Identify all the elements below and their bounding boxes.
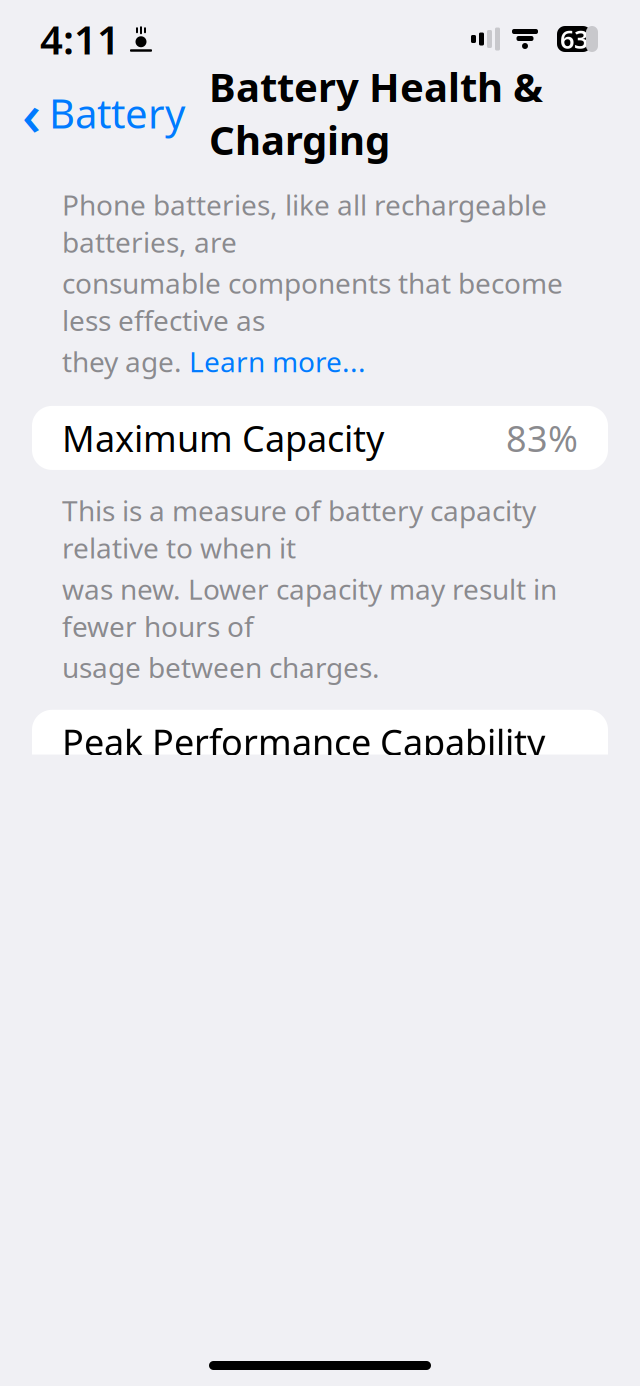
staticText: 63 — [560, 22, 588, 56]
staticText: they age. — [62, 343, 189, 380]
button[interactable]: Peak Performance Capability — [32, 710, 608, 774]
staticText: Phone batteries, like all rechargeable b… — [62, 186, 547, 260]
staticText: usage between charges. — [62, 649, 380, 686]
staticText: Peak Performance Capability — [62, 718, 545, 766]
staticText: consumable components that become less e… — [62, 264, 563, 339]
staticText: Learn more... — [189, 343, 366, 380]
staticText: Battery — [49, 86, 185, 139]
staticText: This is a measure of battery capacity re… — [62, 492, 536, 566]
staticText: ‹ — [22, 74, 41, 152]
staticText: was new. Lower capacity may result in fe… — [62, 570, 557, 645]
staticText: 4:11 — [40, 12, 120, 65]
staticText: 83% — [506, 414, 578, 462]
staticText: Battery Health & Charging — [209, 60, 543, 166]
button[interactable]: Maximum Capacity — [32, 406, 608, 470]
button[interactable]: ‹ — [0, 84, 191, 142]
button[interactable]: Learn more... — [189, 343, 366, 380]
staticText: Maximum Capacity — [62, 414, 384, 462]
